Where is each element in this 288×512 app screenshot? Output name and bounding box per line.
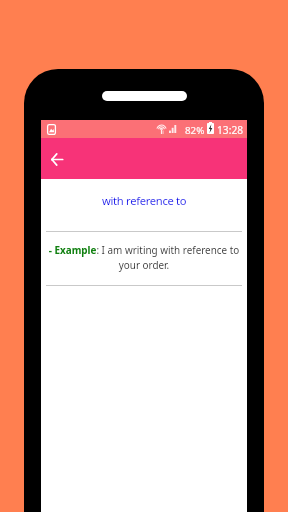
staticText: 13:28 <box>217 123 244 137</box>
button[interactable]: Back <box>40 142 74 176</box>
staticText: - Example: I am writing with reference t… <box>45 243 243 272</box>
button[interactable]: - Example: I am writing with reference t… <box>41 232 247 285</box>
button[interactable]: with reference to <box>41 179 247 231</box>
staticText: 82% <box>185 124 205 137</box>
staticText: with reference to <box>102 193 187 208</box>
